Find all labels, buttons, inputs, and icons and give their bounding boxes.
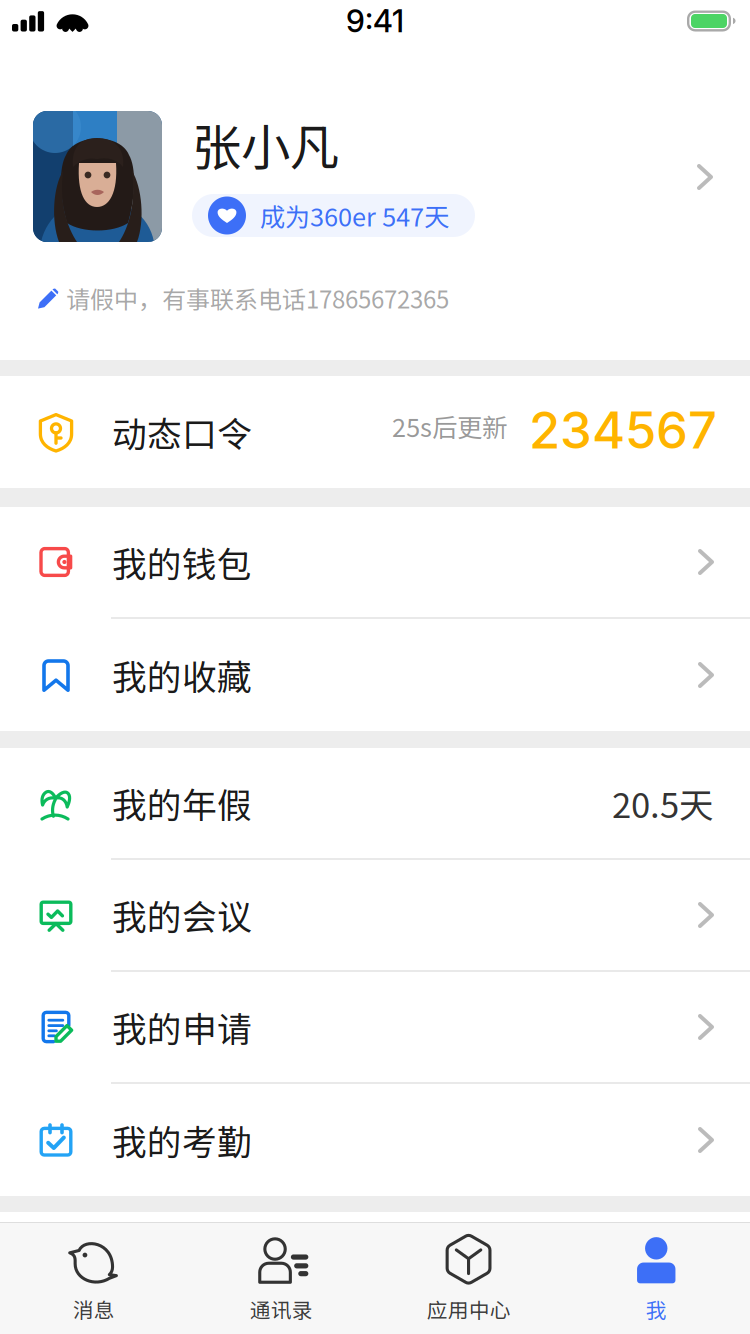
staticText: 我的考勤 xyxy=(112,1115,252,1165)
staticText: 20.5天 xyxy=(612,778,714,828)
staticText: 动态口令 xyxy=(112,407,252,457)
staticText: 我的钱包 xyxy=(112,537,252,587)
button[interactable]: 我的会议 xyxy=(0,860,750,972)
staticText: 请假中，有事联系电话17865672365 xyxy=(66,281,449,315)
button[interactable]: 我的收藏 xyxy=(0,619,750,731)
button[interactable]: 我的年假 xyxy=(0,748,750,860)
staticText: 消息 xyxy=(73,1294,115,1324)
staticText: 应用中心 xyxy=(427,1294,511,1324)
staticText: 我 xyxy=(646,1294,667,1324)
button[interactable]: 通讯录 xyxy=(187,1223,375,1334)
staticText: 我的申请 xyxy=(112,1002,252,1052)
button[interactable]: 我 xyxy=(562,1223,750,1334)
button[interactable]: 应用中心 xyxy=(375,1223,562,1334)
staticText: 25s后更新 xyxy=(392,408,507,444)
button[interactable]: 我的考勤 xyxy=(0,1084,750,1196)
staticText: 通讯录 xyxy=(250,1294,313,1324)
button[interactable]: 我的钱包 xyxy=(0,507,750,619)
staticText: 234567 xyxy=(529,399,717,461)
staticText: 我的年假 xyxy=(112,778,252,828)
button[interactable]: 张小凡 xyxy=(0,41,750,360)
button[interactable]: 消息 xyxy=(0,1223,187,1334)
staticText: 张小凡 xyxy=(192,108,339,180)
button[interactable]: 我的申请 xyxy=(0,972,750,1084)
staticText: 成为360er 547天 xyxy=(260,197,449,234)
staticText: 9:41 xyxy=(346,2,404,39)
staticText: 我的收藏 xyxy=(112,650,252,700)
staticText: 我的会议 xyxy=(112,890,252,940)
button[interactable]: 动态口令 xyxy=(0,376,750,488)
